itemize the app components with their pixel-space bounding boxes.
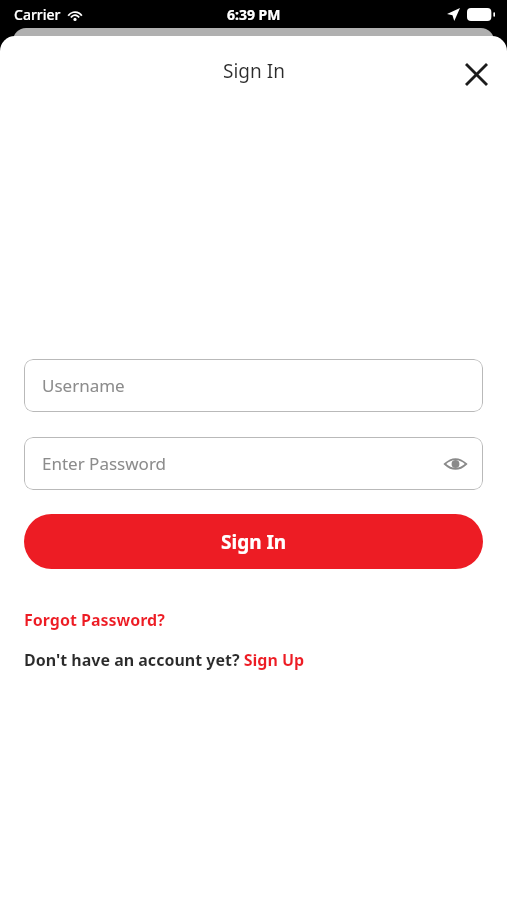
staticText: Forgot Password? — [24, 609, 165, 631]
staticText: Carrier — [14, 5, 61, 24]
button[interactable]: Forgot Password? — [24, 609, 165, 631]
staticText: 6:39 PM — [227, 5, 281, 24]
staticText: Enter Password — [42, 452, 167, 475]
button[interactable]: Close — [452, 50, 500, 98]
staticText: Sign In — [223, 58, 285, 84]
button[interactable]: Sign In — [24, 514, 483, 569]
staticText: Username — [42, 374, 125, 397]
staticText: Sign In — [221, 529, 287, 555]
button[interactable]: Don't have an account yet? Sign Up — [24, 649, 305, 671]
button[interactable]: Show password — [439, 448, 471, 480]
staticText: Don't have an account yet? Sign Up — [24, 649, 305, 671]
button[interactable]: Username — [24, 359, 483, 412]
button[interactable]: Enter Password — [24, 437, 483, 490]
